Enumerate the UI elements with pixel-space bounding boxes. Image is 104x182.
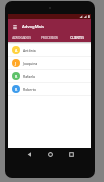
staticText: A bbox=[15, 48, 18, 53]
button[interactable]: R bbox=[8, 83, 91, 95]
staticText: Roberto bbox=[23, 87, 37, 92]
staticText: R bbox=[15, 87, 18, 92]
button[interactable]: Recent apps bbox=[67, 150, 76, 159]
button[interactable]: J bbox=[8, 57, 91, 69]
staticText: Rafaela bbox=[23, 74, 36, 79]
staticText: J bbox=[15, 61, 17, 66]
button[interactable]: Open navigation drawer bbox=[11, 23, 19, 31]
button[interactable]: R bbox=[8, 70, 91, 82]
button[interactable]: PROCESSOS bbox=[35, 34, 63, 42]
button[interactable]: ADVOGADOS bbox=[8, 34, 35, 42]
button[interactable]: Home bbox=[46, 150, 55, 159]
staticText: AdvogMais bbox=[22, 24, 45, 30]
staticText: R bbox=[15, 74, 18, 79]
staticText: Antônia bbox=[23, 48, 36, 53]
button[interactable]: A bbox=[8, 44, 91, 56]
staticText: PROCESSOS bbox=[41, 36, 58, 40]
staticText: CLIENTES bbox=[70, 36, 84, 40]
staticText: Joaquina bbox=[23, 61, 38, 66]
button[interactable]: Back bbox=[25, 150, 34, 159]
staticText: ADVOGADOS bbox=[12, 36, 31, 40]
button[interactable]: CLIENTES bbox=[63, 34, 91, 42]
